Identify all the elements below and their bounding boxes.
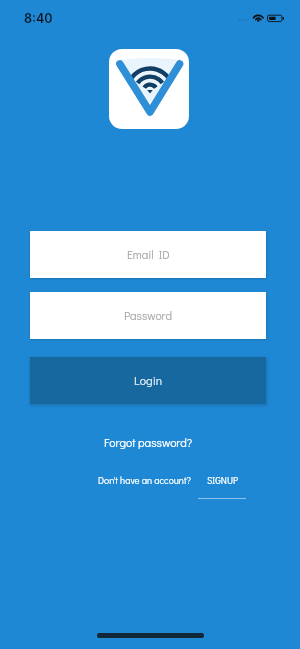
button[interactable]: SIGNUP <box>207 474 238 486</box>
staticText: 8:40 <box>24 11 53 26</box>
button[interactable]: Login <box>30 357 266 404</box>
button[interactable]: Forgot password? <box>98 433 199 452</box>
staticText: Login <box>134 373 163 389</box>
staticText: Password <box>124 308 172 323</box>
staticText: Email ID <box>127 247 170 262</box>
button[interactable]: Email ID <box>30 231 266 278</box>
staticText: Don't have an account? <box>98 474 191 486</box>
button[interactable]: Password <box>30 292 266 339</box>
staticText: Forgot password? <box>104 435 193 450</box>
staticText: SIGNUP <box>207 474 238 486</box>
